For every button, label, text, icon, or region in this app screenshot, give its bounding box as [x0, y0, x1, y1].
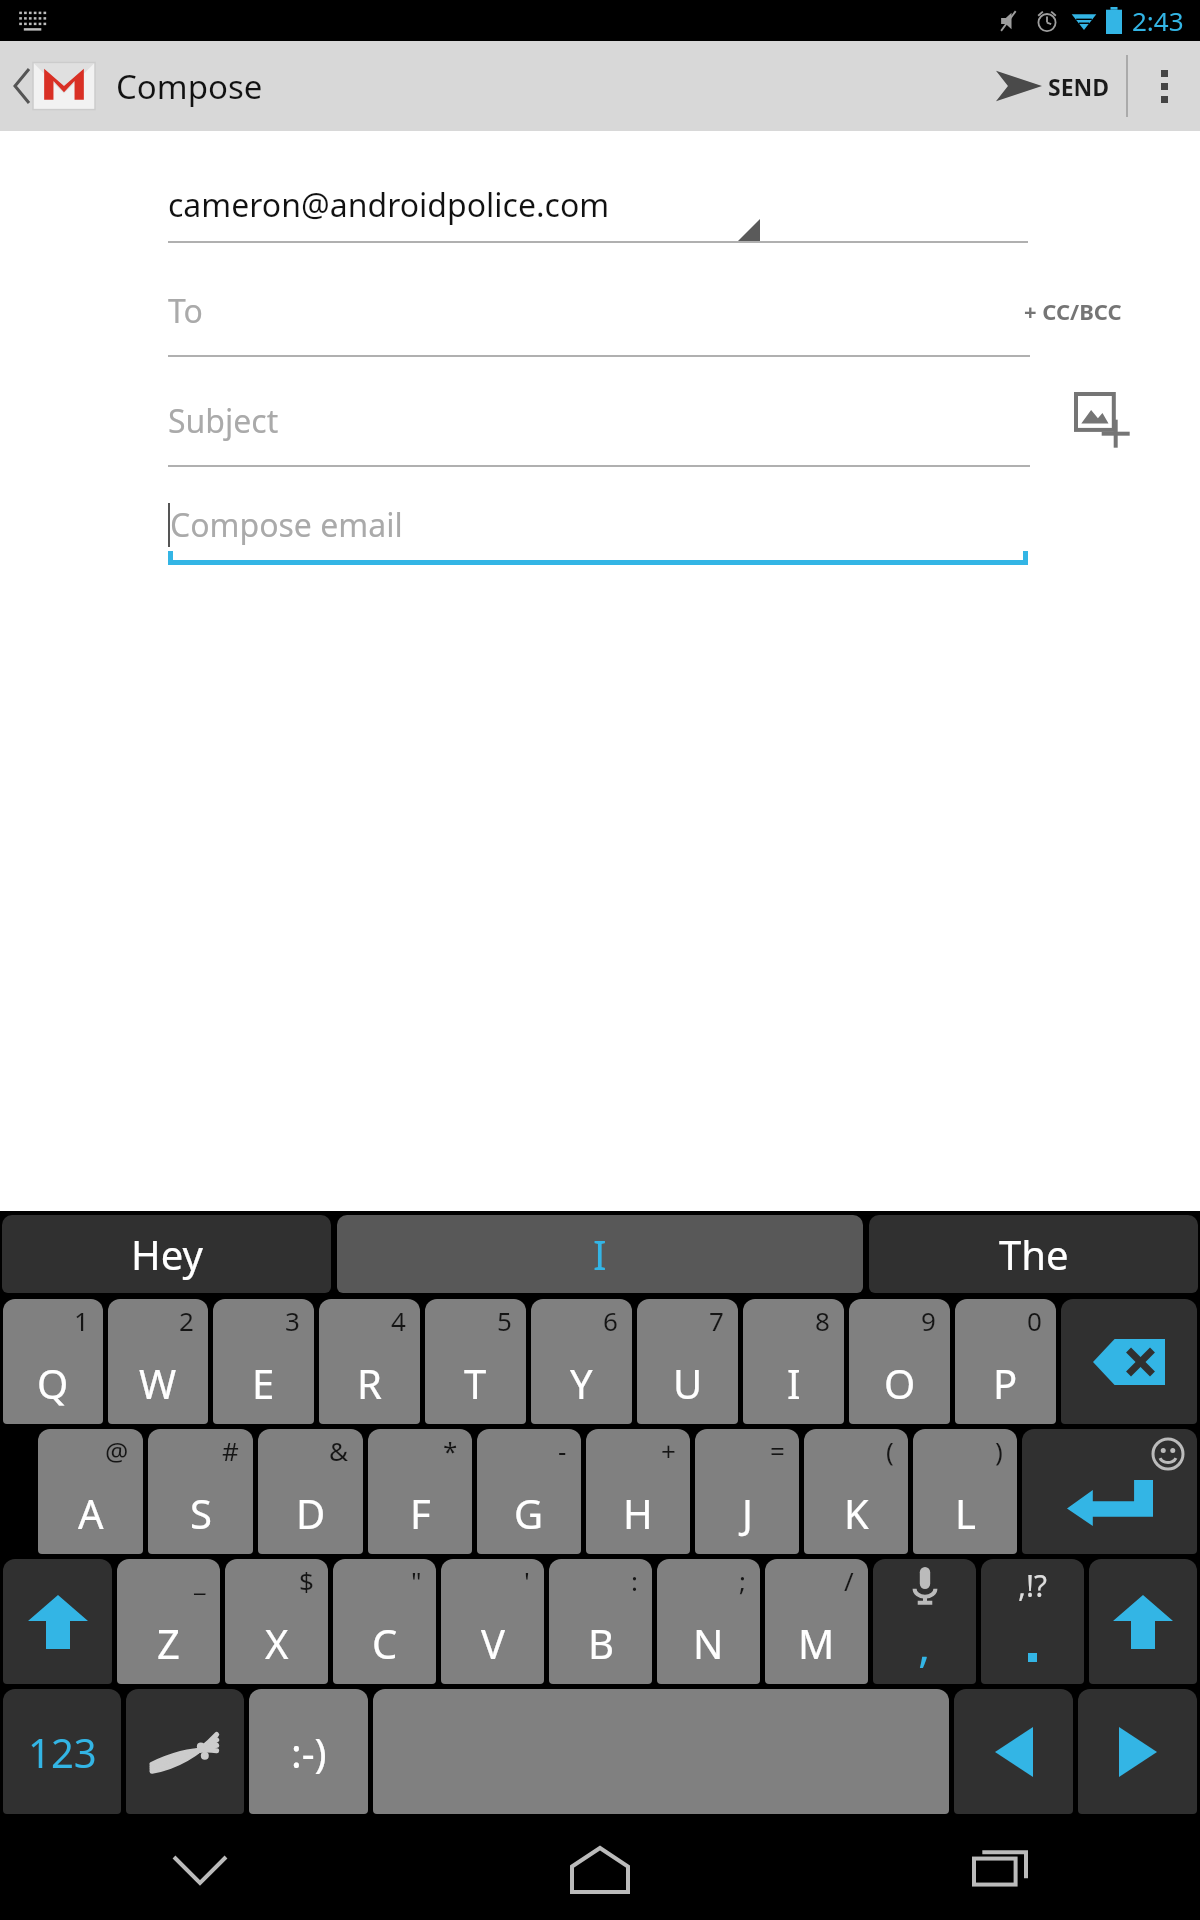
staticText: 4 [391, 1303, 406, 1338]
button[interactable]: T [425, 1299, 526, 1424]
button[interactable]: V [441, 1559, 544, 1684]
button[interactable]: C [333, 1559, 436, 1684]
staticText: $ [299, 1563, 314, 1598]
button[interactable]: SEND [988, 41, 1118, 131]
button[interactable]: Q [3, 1299, 103, 1424]
button[interactable]: A [38, 1429, 143, 1554]
staticText: + [661, 1433, 676, 1468]
staticText: L [955, 1486, 976, 1540]
staticText: E [252, 1356, 275, 1410]
button[interactable]: + CC/BCC [1024, 296, 1122, 326]
button[interactable]: Hide keyboard [140, 1820, 260, 1920]
staticText: To [168, 289, 203, 333]
staticText: 3 [285, 1303, 300, 1338]
staticText: Compose email [170, 503, 403, 547]
button[interactable]: L [913, 1429, 1017, 1554]
button[interactable]: Subject [168, 375, 760, 467]
staticText: - [558, 1433, 567, 1468]
button[interactable]: H [586, 1429, 690, 1554]
staticText: 6 [603, 1303, 618, 1338]
button[interactable]: J [695, 1429, 799, 1554]
staticText: & [329, 1433, 349, 1468]
staticText: Y [570, 1356, 593, 1410]
button[interactable]: Z [117, 1559, 220, 1684]
staticText: H [623, 1486, 653, 1540]
staticText: 1 [74, 1303, 89, 1338]
staticText: cameron@androidpolice.com [168, 183, 610, 227]
button[interactable]: D [258, 1429, 363, 1554]
staticText: A [78, 1486, 104, 1540]
staticText: C [372, 1616, 398, 1670]
button[interactable]: Home [540, 1820, 660, 1920]
button[interactable]: X [225, 1559, 328, 1684]
button[interactable]: F [368, 1429, 472, 1554]
staticText: G [514, 1486, 544, 1540]
button[interactable]: I [337, 1215, 863, 1293]
button[interactable]: K [804, 1429, 908, 1554]
button[interactable]: W [108, 1299, 208, 1424]
staticText: D [296, 1486, 326, 1540]
staticText: @ [105, 1433, 129, 1468]
staticText: R [357, 1356, 382, 1410]
button[interactable]: Emoticon [249, 1689, 368, 1814]
button[interactable]: Attach image [1076, 394, 1130, 448]
button[interactable]: R [319, 1299, 420, 1424]
staticText: " [411, 1563, 422, 1598]
button[interactable]: O [849, 1299, 950, 1424]
staticText: O [884, 1356, 916, 1410]
button[interactable]: Numbers [3, 1689, 121, 1814]
button[interactable]: E [213, 1299, 314, 1424]
staticText: # [222, 1433, 239, 1468]
button[interactable]: N [657, 1559, 760, 1684]
staticText: SEND [1048, 71, 1110, 102]
staticText: 2 [179, 1303, 194, 1338]
staticText: 7 [709, 1303, 724, 1338]
staticText: I [593, 1227, 607, 1281]
button[interactable]: Period [981, 1559, 1084, 1684]
button[interactable]: The [869, 1215, 1198, 1293]
staticText: J [742, 1486, 753, 1540]
button[interactable]: Recent apps [940, 1820, 1060, 1920]
staticText: 9 [921, 1303, 936, 1338]
staticText: T [464, 1356, 487, 1410]
staticText: Hey [131, 1227, 203, 1281]
button[interactable]: M [765, 1559, 868, 1684]
button[interactable]: S [148, 1429, 253, 1554]
staticText: _ [194, 1563, 206, 1598]
button[interactable]: More options [1128, 41, 1200, 131]
staticText: B [588, 1616, 614, 1670]
staticText: 123 [28, 1725, 97, 1779]
button[interactable]: Backspace [1061, 1299, 1197, 1424]
button[interactable]: Enter [1022, 1429, 1197, 1554]
button[interactable]: Navigate up [0, 41, 110, 131]
staticText: * [443, 1433, 458, 1468]
button[interactable]: Shift [3, 1559, 112, 1684]
staticText: 0 [1027, 1303, 1042, 1338]
staticText: Subject [168, 399, 279, 443]
button[interactable]: U [637, 1299, 738, 1424]
staticText: 8 [815, 1303, 830, 1338]
button[interactable]: G [477, 1429, 581, 1554]
button[interactable]: Y [531, 1299, 632, 1424]
button[interactable]: cameron@androidpolice.com [168, 167, 760, 243]
button[interactable]: Space [373, 1689, 949, 1814]
staticText: N [693, 1616, 724, 1670]
staticText: Z [157, 1616, 180, 1670]
staticText: X [265, 1616, 289, 1670]
button[interactable]: Comma [873, 1559, 976, 1684]
staticText: ; [739, 1563, 746, 1598]
staticText: Q [37, 1356, 69, 1410]
staticText: + CC/BCC [1024, 296, 1122, 326]
button[interactable]: Hey [2, 1215, 331, 1293]
staticText: , [918, 1613, 931, 1676]
button[interactable]: SwiftKey menu [126, 1689, 244, 1814]
button[interactable]: Cursor left [954, 1689, 1073, 1814]
button[interactable]: Cursor right [1078, 1689, 1197, 1814]
staticText: / [844, 1563, 854, 1598]
button[interactable]: Shift [1089, 1559, 1197, 1684]
button[interactable]: To [168, 265, 760, 357]
button[interactable]: P [955, 1299, 1056, 1424]
button[interactable]: Compose email [168, 485, 760, 565]
button[interactable]: I [743, 1299, 844, 1424]
button[interactable]: B [549, 1559, 652, 1684]
